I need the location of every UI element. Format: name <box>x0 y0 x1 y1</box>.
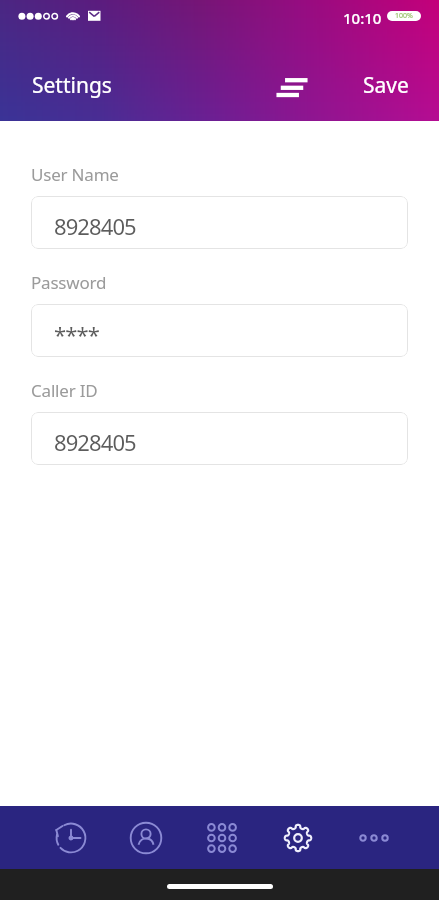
staticText: 8928405 <box>54 427 136 457</box>
button[interactable]: Settings <box>260 806 336 869</box>
button[interactable]: **** <box>31 304 408 357</box>
button[interactable]: Contacts <box>108 806 184 869</box>
staticText: 100% <box>395 11 413 21</box>
button[interactable]: Sort <box>268 65 316 111</box>
button[interactable]: 8928405 <box>31 196 408 249</box>
staticText: User Name <box>31 163 119 186</box>
button[interactable]: Save <box>350 62 422 109</box>
staticText: Password <box>31 271 107 294</box>
staticText: Save <box>363 71 409 100</box>
button[interactable]: Dialpad <box>184 806 260 869</box>
staticText: 10:10 <box>343 8 382 28</box>
button[interactable]: Settings <box>17 62 127 109</box>
button[interactable]: 8928405 <box>31 412 408 465</box>
staticText: **** <box>54 319 99 349</box>
staticText: 8928405 <box>54 211 136 241</box>
staticText: Caller ID <box>31 379 98 402</box>
button[interactable]: History <box>33 806 108 869</box>
button[interactable]: More <box>336 806 412 869</box>
staticText: Settings <box>32 71 112 100</box>
